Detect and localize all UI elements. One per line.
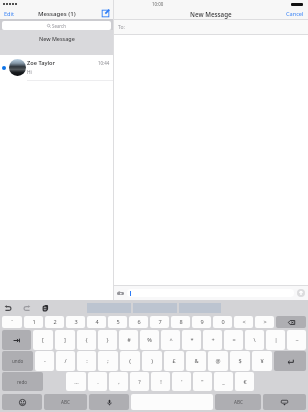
button[interactable]: 4: [87, 316, 106, 328]
staticText: ': [181, 378, 183, 386]
staticText: *: [190, 336, 194, 344]
staticText: ...: [74, 378, 79, 386]
staticText: 3: [74, 318, 78, 326]
staticText: ABC: [234, 399, 243, 405]
button[interactable]: 6: [129, 316, 148, 328]
button[interactable]: ]: [55, 330, 75, 350]
button[interactable]: \: [245, 330, 264, 350]
button[interactable]: Zoe Taylor: [0, 55, 113, 80]
button[interactable]: >: [255, 316, 274, 328]
staticText: undo: [12, 358, 24, 364]
button[interactable]: ABC: [215, 394, 261, 410]
button[interactable]: ': [172, 372, 191, 391]
button[interactable]: !: [151, 372, 170, 391]
button[interactable]: |: [266, 330, 285, 350]
staticText: ": [201, 378, 204, 386]
button[interactable]: Tab: [2, 330, 31, 350]
staticText: 7: [158, 318, 162, 326]
button[interactable]: ": [193, 372, 212, 391]
button[interactable]: undo: [2, 351, 33, 371]
button[interactable]: €: [235, 372, 254, 391]
button[interactable]: .: [88, 372, 107, 391]
staticText: |: [274, 336, 278, 344]
button[interactable]: Compose new message: [101, 9, 110, 18]
staticText: `: [11, 318, 13, 326]
button[interactable]: /: [56, 351, 75, 371]
button[interactable]: Redo: [23, 304, 31, 312]
button[interactable]: +: [203, 330, 222, 350]
button[interactable]: [127, 289, 294, 297]
staticText: ]: [64, 336, 66, 344]
button[interactable]: ?: [130, 372, 149, 391]
button[interactable]: redo: [2, 372, 43, 391]
button[interactable]: Paste: [42, 304, 50, 312]
button[interactable]: &: [186, 351, 206, 371]
button[interactable]: =: [224, 330, 243, 350]
staticText: Search: [52, 23, 66, 29]
button[interactable]: #: [119, 330, 138, 350]
button[interactable]: ¥: [252, 351, 272, 371]
button[interactable]: New Message: [0, 30, 113, 55]
staticText: ): [151, 357, 153, 365]
button[interactable]: Edit: [4, 10, 15, 18]
button[interactable]: Send: [297, 289, 305, 297]
button[interactable]: $: [230, 351, 250, 371]
button[interactable]: `: [2, 316, 22, 328]
staticText: ,: [118, 378, 120, 386]
button[interactable]: ...: [66, 372, 86, 391]
button[interactable]: ABC: [44, 394, 87, 410]
button[interactable]: <: [234, 316, 253, 328]
button[interactable]: Search: [2, 21, 111, 30]
button[interactable]: @: [208, 351, 228, 371]
button[interactable]: Dictate: [89, 394, 129, 410]
button[interactable]: _: [214, 372, 233, 391]
button[interactable]: Backspace: [276, 316, 306, 328]
button[interactable]: ^: [161, 330, 180, 350]
button[interactable]: Hide keyboard: [263, 394, 306, 410]
button[interactable]: 2: [45, 316, 64, 328]
button[interactable]: ;: [98, 351, 118, 371]
staticText: <: [242, 318, 246, 326]
staticText: %: [147, 336, 152, 344]
button[interactable]: 0: [213, 316, 232, 328]
button[interactable]: ): [142, 351, 162, 371]
staticText: Hi: [27, 69, 32, 76]
button[interactable]: (: [120, 351, 140, 371]
button[interactable]: Cancel: [286, 10, 304, 18]
staticText: !: [160, 378, 162, 386]
button[interactable]: 8: [171, 316, 190, 328]
button[interactable]: [: [33, 330, 53, 350]
button[interactable]: Emoji: [2, 394, 42, 410]
button[interactable]: 7: [150, 316, 169, 328]
button[interactable]: ,: [109, 372, 128, 391]
button[interactable]: To:: [114, 20, 308, 34]
button[interactable]: £: [164, 351, 184, 371]
button[interactable]: ~: [287, 330, 306, 350]
button[interactable]: Undo: [4, 304, 12, 312]
button[interactable]: 5: [108, 316, 127, 328]
button[interactable]: -: [35, 351, 54, 371]
button[interactable]: :: [77, 351, 96, 371]
staticText: #: [127, 336, 131, 344]
button[interactable]: 9: [192, 316, 211, 328]
button[interactable]: Take photo: [117, 290, 124, 297]
staticText: ;: [107, 357, 109, 365]
staticText: €: [243, 378, 247, 386]
button[interactable]: 3: [66, 316, 85, 328]
staticText: ~: [295, 336, 299, 344]
button[interactable]: *: [182, 330, 201, 350]
button[interactable]: {: [77, 330, 96, 350]
button[interactable]: Return: [274, 351, 306, 371]
staticText: 0: [221, 318, 225, 326]
button[interactable]: }: [98, 330, 117, 350]
button[interactable]: %: [140, 330, 159, 350]
staticText: }: [106, 336, 109, 344]
staticText: New Message: [190, 10, 232, 18]
button[interactable]: 1: [24, 316, 43, 328]
